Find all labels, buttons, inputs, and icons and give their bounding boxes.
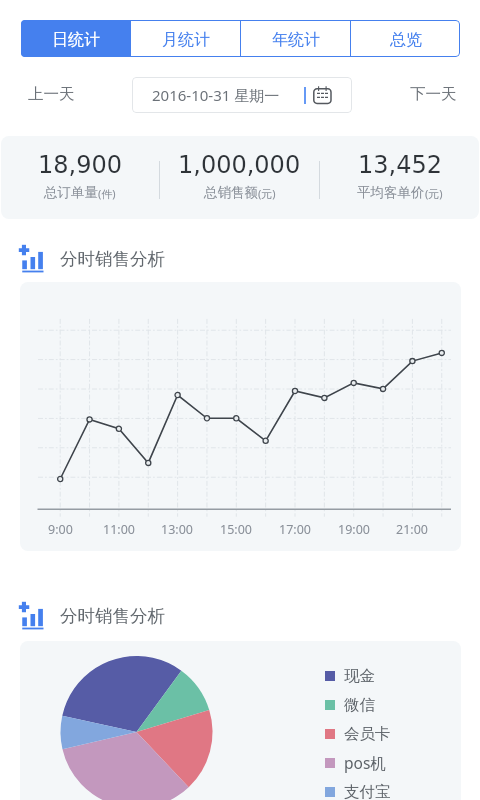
button[interactable]: 日统计 <box>21 20 130 57</box>
staticText: 月统计 <box>162 30 210 50</box>
button[interactable]: 18,900 <box>1 136 159 219</box>
staticText: 13,452 <box>358 151 442 179</box>
button[interactable]: pos机 <box>325 748 445 777</box>
button[interactable]: 微信 <box>325 690 445 719</box>
staticText: (元) <box>258 186 276 201</box>
button[interactable]: 总览 <box>351 20 460 57</box>
staticText: 18,900 <box>38 151 122 179</box>
staticText: 1,000,000 <box>178 151 301 179</box>
staticText: 13:00 <box>161 521 193 538</box>
staticText: 现金 <box>344 666 375 686</box>
staticText: 9:00 <box>48 521 73 538</box>
button[interactable]: 2016-10-31 星期一 <box>132 77 352 113</box>
staticText: 15:00 <box>220 521 252 538</box>
staticText: 分时销售分析 <box>60 248 165 270</box>
button[interactable]: 支付宝 <box>325 777 445 800</box>
button[interactable]: 13,452 <box>320 136 479 219</box>
staticText: 分时销售分析 <box>60 605 165 627</box>
staticText: 19:00 <box>338 521 370 538</box>
staticText: 2016-10-31 星期一 <box>152 85 280 105</box>
other: Pick date <box>313 86 332 105</box>
staticText: 平均客单价 <box>357 184 425 201</box>
staticText: 总订单量 <box>44 184 98 201</box>
staticText: 总销售额 <box>204 184 258 201</box>
staticText: 总览 <box>390 30 422 50</box>
button[interactable]: 现金 <box>325 661 445 690</box>
staticText: 支付宝 <box>344 782 391 800</box>
staticText: pos机 <box>344 752 386 773</box>
staticText: 年统计 <box>272 30 320 50</box>
button[interactable]: 年统计 <box>241 20 350 57</box>
button[interactable]: 1,000,000 <box>160 136 319 219</box>
staticText: 微信 <box>344 695 375 715</box>
staticText: 日统计 <box>52 30 100 50</box>
button[interactable]: 上一天 <box>22 76 80 112</box>
staticText: 11:00 <box>103 521 135 538</box>
staticText: (件) <box>98 186 116 201</box>
staticText: 上一天 <box>28 84 75 104</box>
staticText: 21:00 <box>396 521 428 538</box>
button[interactable]: 会员卡 <box>325 719 445 748</box>
staticText: 下一天 <box>410 84 457 104</box>
staticText: 17:00 <box>279 521 311 538</box>
button[interactable]: 下一天 <box>404 76 462 112</box>
staticText: 会员卡 <box>344 724 391 744</box>
staticText: (元) <box>425 186 443 201</box>
button[interactable]: 月统计 <box>131 20 240 57</box>
